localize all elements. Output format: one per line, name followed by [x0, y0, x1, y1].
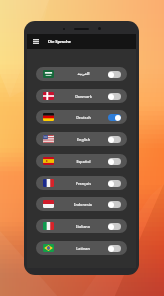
staticText: Español — [76, 159, 91, 164]
staticText: Indonesia — [74, 202, 92, 207]
staticText: English — [77, 137, 90, 142]
button[interactable]: Toggle — [108, 223, 121, 230]
button[interactable]: العربية — [36, 67, 127, 81]
button[interactable]: English — [36, 132, 127, 146]
button[interactable]: Toggle — [108, 180, 121, 187]
staticText: Die Sprache — [48, 39, 71, 45]
button[interactable]: Toggle — [108, 136, 121, 143]
staticText: Italiano — [76, 224, 90, 229]
staticText: Français — [76, 181, 91, 186]
button[interactable]: Toggle — [108, 245, 121, 252]
staticText: Danmark — [75, 94, 92, 99]
button[interactable]: Toggle — [108, 158, 121, 165]
button[interactable]: Danmark — [36, 89, 127, 103]
staticText: Latinan — [76, 246, 90, 251]
button[interactable]: Toggle — [108, 114, 121, 121]
staticText: Deutsch — [76, 115, 91, 120]
button[interactable]: Español — [36, 154, 127, 168]
button[interactable]: Italiano — [36, 219, 127, 233]
button[interactable]: Deutsch — [36, 110, 127, 124]
button[interactable]: Menu — [32, 38, 39, 45]
button[interactable]: Toggle — [108, 93, 121, 100]
button[interactable]: Français — [36, 176, 127, 190]
button[interactable]: Indonesia — [36, 197, 127, 211]
button[interactable]: Latinan — [36, 241, 127, 255]
button[interactable]: Toggle — [108, 71, 121, 78]
staticText: العربية — [77, 72, 90, 76]
button[interactable]: Toggle — [108, 201, 121, 208]
